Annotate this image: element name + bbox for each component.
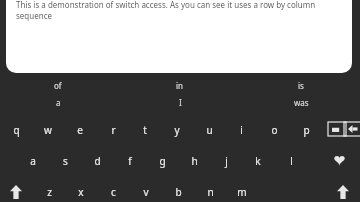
button[interactable]: u	[198, 121, 220, 139]
staticText: r	[111, 123, 116, 137]
button[interactable]: Shift	[4, 181, 28, 202]
button[interactable]: g	[151, 152, 173, 170]
staticText: g	[159, 154, 166, 168]
staticText: u	[206, 123, 213, 137]
staticText: x	[78, 185, 84, 199]
staticText: i	[240, 123, 243, 137]
staticText: s	[63, 154, 68, 168]
staticText: b	[175, 185, 182, 199]
staticText: f	[128, 154, 132, 168]
button[interactable]: k	[247, 152, 269, 170]
staticText: d	[94, 154, 101, 168]
staticText: k	[255, 154, 261, 168]
button[interactable]: x	[70, 183, 92, 201]
staticText: q	[13, 123, 20, 137]
staticText: j	[225, 154, 228, 168]
staticText: of	[54, 80, 62, 91]
staticText: h	[191, 154, 198, 168]
button[interactable]: is	[281, 79, 321, 92]
button[interactable]: Enter	[344, 122, 360, 136]
staticText: m	[237, 185, 247, 199]
button[interactable]: e	[69, 121, 91, 139]
button[interactable]: t	[134, 121, 156, 139]
staticText: w	[44, 123, 52, 137]
button[interactable]: Delete	[328, 122, 346, 136]
button[interactable]: Shift	[331, 181, 355, 202]
button[interactable]: b	[167, 183, 189, 201]
staticText: l	[290, 154, 293, 168]
button[interactable]: h	[183, 152, 205, 170]
button[interactable]: a	[22, 152, 44, 170]
button[interactable]: i	[230, 121, 252, 139]
button[interactable]: n	[199, 183, 221, 201]
button[interactable]: c	[102, 183, 124, 201]
staticText: a	[56, 97, 61, 108]
button[interactable]: p	[295, 121, 317, 139]
button[interactable]: I	[160, 96, 200, 109]
staticText: o	[271, 123, 278, 137]
staticText: t	[143, 123, 147, 137]
button[interactable]: l	[280, 152, 302, 170]
staticText: was	[294, 97, 309, 108]
staticText: is	[298, 80, 304, 91]
button[interactable]: q	[5, 121, 27, 139]
button[interactable]: s	[54, 152, 76, 170]
button[interactable]: of	[38, 79, 78, 92]
staticText: This is a demonstration of switch access…	[16, 0, 340, 22]
staticText: I	[179, 97, 182, 108]
staticText: p	[303, 123, 310, 137]
button[interactable]: This is a demonstration of switch access…	[6, 0, 352, 73]
staticText: y	[174, 123, 180, 137]
staticText: c	[111, 185, 116, 199]
button[interactable]: a	[38, 96, 78, 109]
button[interactable]: in	[160, 79, 200, 92]
staticText: v	[143, 185, 149, 199]
staticText: z	[47, 185, 52, 199]
button[interactable]: y	[166, 121, 188, 139]
staticText: n	[207, 185, 214, 199]
button[interactable]: w	[37, 121, 59, 139]
staticText: e	[77, 123, 83, 137]
button[interactable]: j	[215, 152, 237, 170]
button[interactable]: f	[119, 152, 141, 170]
button[interactable]: Emoji	[329, 152, 349, 170]
button[interactable]: m	[231, 183, 253, 201]
staticText: a	[30, 154, 36, 168]
button[interactable]: v	[135, 183, 157, 201]
button[interactable]: d	[86, 152, 108, 170]
button[interactable]: z	[38, 183, 60, 201]
button[interactable]: was	[281, 96, 321, 109]
button[interactable]: r	[102, 121, 124, 139]
button[interactable]: o	[263, 121, 285, 139]
staticText: in	[176, 80, 184, 91]
